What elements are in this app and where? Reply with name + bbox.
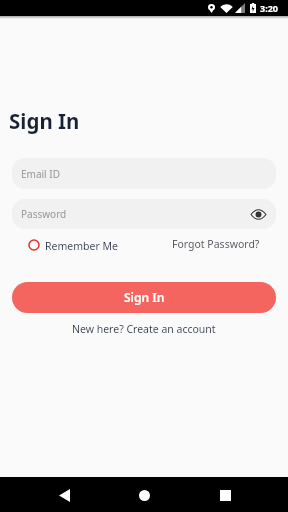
staticText: Remember Me [45, 239, 118, 251]
staticText: Password [21, 207, 67, 221]
button[interactable]: Remember Me [28, 239, 118, 251]
button[interactable] [47, 478, 81, 512]
button[interactable] [208, 478, 242, 512]
staticText: Email ID [21, 167, 60, 181]
button[interactable]: Email ID [12, 158, 276, 189]
staticText: Sign In [9, 107, 80, 135]
button[interactable]: Password [12, 199, 276, 229]
button[interactable]: New here? Create an account [72, 322, 216, 336]
button[interactable] [127, 478, 161, 512]
button[interactable]: Sign In [12, 282, 276, 313]
staticText: 3:20 [260, 2, 278, 14]
button[interactable]: Forgot Password? [172, 237, 260, 251]
staticText: Sign In [124, 289, 165, 305]
